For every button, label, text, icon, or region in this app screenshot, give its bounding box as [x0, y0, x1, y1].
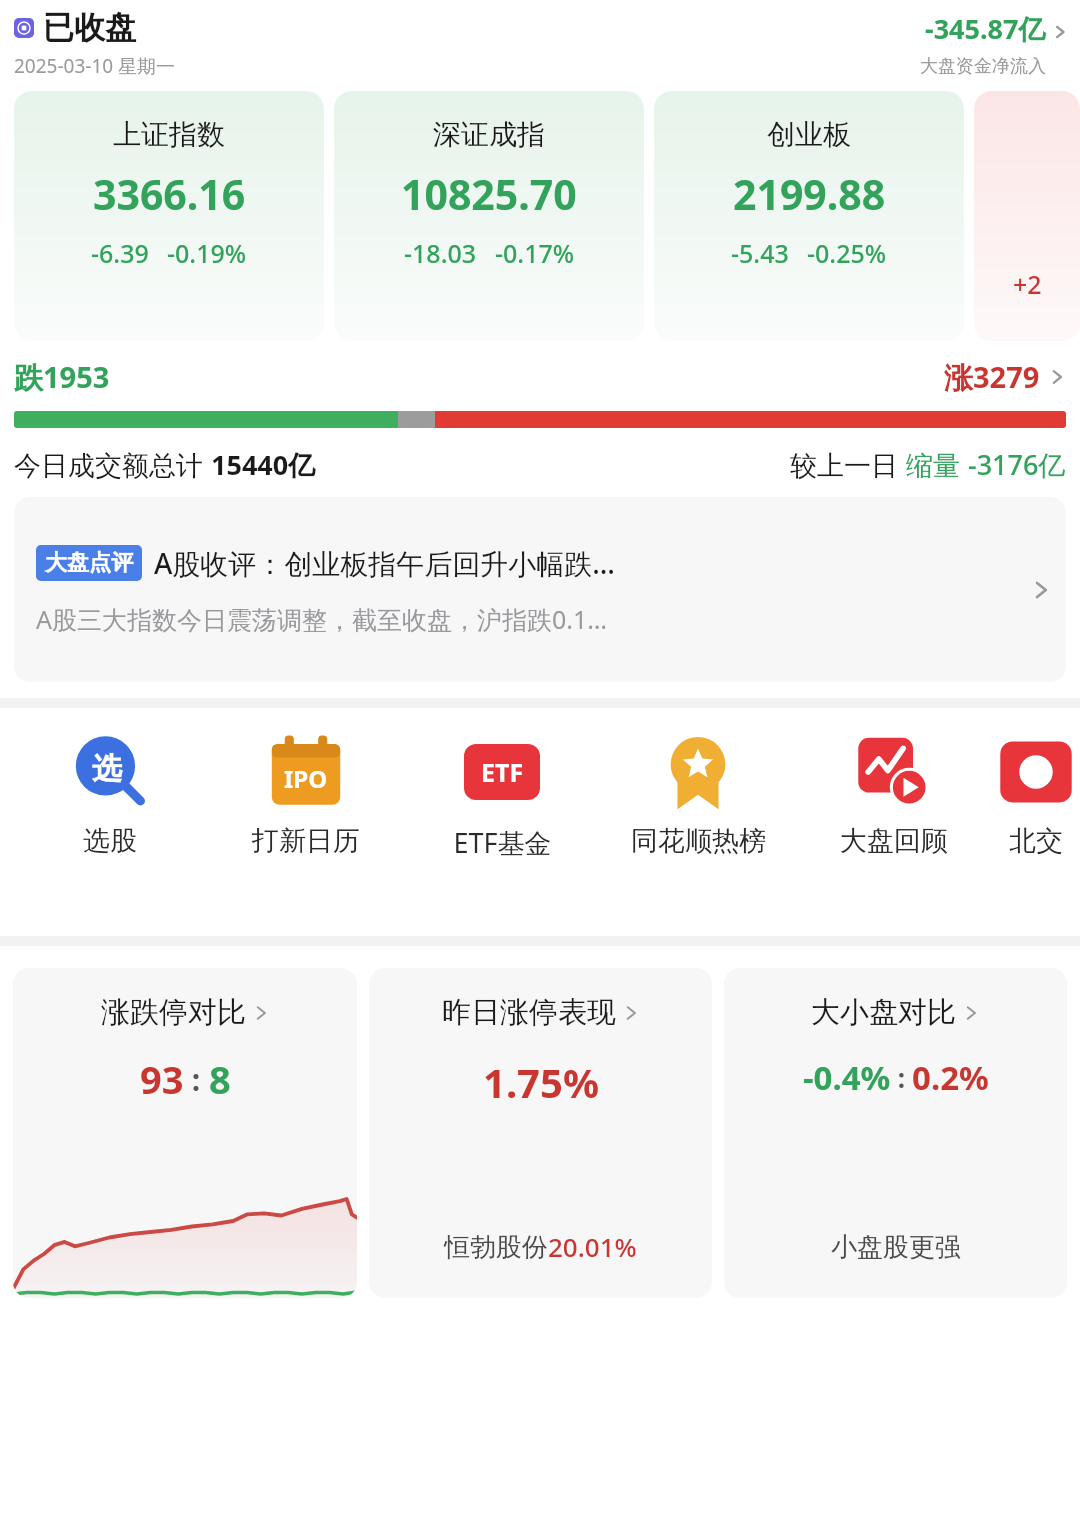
staticText: IPO	[284, 762, 328, 795]
staticText: 大盘回顾	[840, 824, 948, 858]
staticText: 跌1953	[14, 357, 110, 397]
other: 打新日历	[268, 734, 344, 810]
other: ETF基金	[464, 734, 540, 810]
staticText: -0.19%	[167, 236, 247, 270]
staticText: :	[891, 1060, 912, 1095]
staticText: 缩量	[906, 446, 968, 483]
staticText: -0.17%	[495, 236, 575, 270]
staticText: 今日成交额总计	[14, 446, 211, 483]
button[interactable]: 大盘点评	[14, 497, 1066, 682]
staticText: -6.39	[91, 236, 149, 270]
staticText: -18.03	[404, 236, 477, 270]
staticText: :	[184, 1059, 209, 1100]
staticText: -345.87亿	[925, 10, 1046, 47]
button[interactable]: 涨跌停对比	[13, 968, 357, 1298]
staticText: -5.43	[731, 236, 789, 270]
staticText: A股三大指数今日震荡调整，截至收盘，沪指跌0.1…	[36, 602, 608, 636]
button[interactable]: 跌1953	[14, 357, 1066, 397]
button[interactable]: 创业板	[654, 91, 964, 341]
other: 北交所	[998, 734, 1074, 810]
staticText: 上证指数	[113, 117, 225, 152]
staticText: -0.25%	[807, 236, 887, 270]
staticText: 1.75%	[483, 1055, 599, 1109]
button[interactable]: 选股	[12, 734, 208, 858]
staticText: +2	[1013, 267, 1042, 301]
staticText: ETF	[481, 755, 524, 789]
staticText: 2199.88	[733, 166, 886, 222]
staticText: 大盘点评	[45, 549, 133, 577]
staticText: 深证成指	[433, 117, 545, 152]
button[interactable]: 大小盘对比	[724, 968, 1067, 1298]
staticText: 10825.70	[401, 166, 577, 222]
other: 大盘回顾	[856, 734, 932, 810]
button[interactable]: 上证指数	[14, 91, 324, 341]
button[interactable]: 打新日历	[208, 734, 404, 858]
staticText: 8	[209, 1053, 231, 1105]
staticText: 涨3279	[944, 357, 1040, 397]
button[interactable]: 深证成指	[334, 91, 644, 341]
staticText: -3176亿	[968, 446, 1066, 483]
button[interactable]: 昨日涨停表现	[369, 968, 712, 1298]
staticText: 大小盘对比	[811, 994, 956, 1031]
staticText: 20.01%	[548, 1229, 637, 1264]
other: 选股	[72, 734, 148, 810]
staticText: 昨日涨停表现	[442, 994, 616, 1031]
staticText: 较上一日	[790, 446, 906, 483]
staticText: 创业板	[767, 117, 851, 152]
button[interactable]: 大盘回顾	[796, 734, 992, 858]
staticText: 北交	[1009, 824, 1063, 858]
staticText: 恒勃股份	[444, 1231, 548, 1264]
staticText: 选	[92, 750, 122, 788]
staticText: ETF基金	[453, 824, 552, 861]
button[interactable]: ETF基金	[404, 734, 600, 861]
staticText: 同花顺热榜	[631, 824, 766, 858]
staticText: 0.2%	[912, 1055, 989, 1100]
staticText: 大盘资金净流入	[920, 55, 1046, 78]
staticText: -0.4%	[803, 1055, 891, 1100]
other: 同花顺热榜	[660, 734, 736, 810]
staticText: 3366.16	[93, 166, 246, 222]
staticText: 15440亿	[211, 446, 316, 483]
staticText: A股收评：创业板指午后回升小幅跌…	[154, 544, 1020, 582]
button[interactable]: 北交所	[992, 734, 1080, 858]
button[interactable]: 同花顺热榜	[600, 734, 796, 858]
staticText: 93	[140, 1053, 184, 1105]
staticText: 已收盘	[43, 8, 136, 47]
staticText: 小盘股更强	[831, 1231, 961, 1264]
staticText: 打新日历	[252, 824, 360, 858]
staticText: 2025-03-10 星期一	[14, 53, 176, 79]
staticText: 涨跌停对比	[101, 994, 246, 1031]
button[interactable]: +2	[974, 91, 1080, 341]
staticText: 选股	[83, 824, 137, 858]
